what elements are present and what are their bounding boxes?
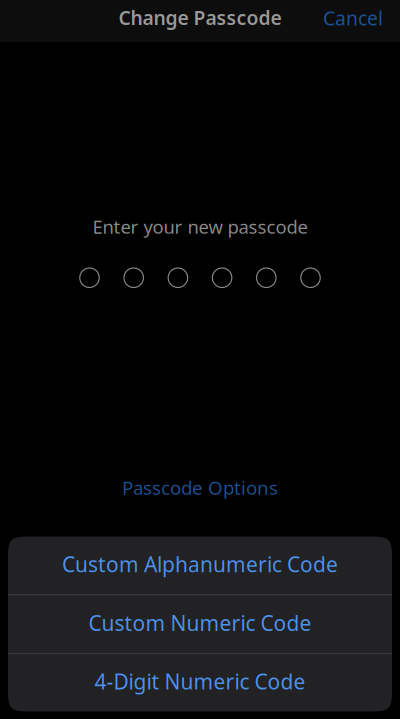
staticText: Enter your new passcode [92,214,307,239]
staticText: Custom Alphanumeric Code [62,550,338,578]
button[interactable]: 4-Digit Numeric Code [8,654,392,711]
button[interactable]: Custom Alphanumeric Code [8,537,392,594]
staticText: Change Passcode [118,4,281,31]
button[interactable]: Passcode Options [108,471,292,505]
staticText: Custom Numeric Code [88,608,311,637]
button[interactable]: Custom Numeric Code [8,595,392,653]
staticText: Passcode Options [122,475,278,500]
button[interactable]: Cancel [314,4,392,38]
staticText: 4-Digit Numeric Code [94,667,305,696]
staticText: Cancel [323,5,383,31]
